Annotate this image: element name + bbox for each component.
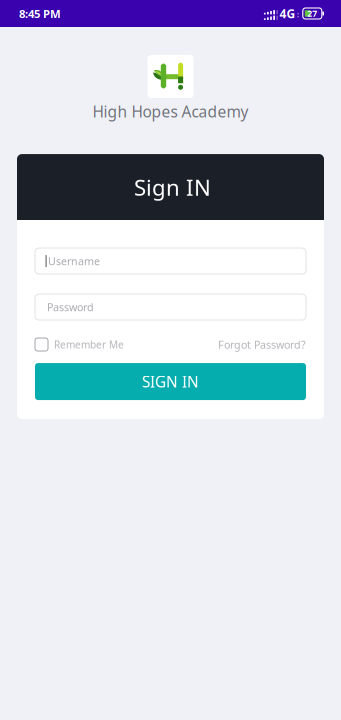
staticText: 27 bbox=[307, 8, 317, 19]
staticText: Username bbox=[48, 254, 100, 268]
staticText: SIGN IN bbox=[142, 371, 199, 392]
button[interactable]: Remember Me bbox=[35, 338, 124, 351]
staticText: Password bbox=[47, 300, 94, 314]
button[interactable]: Password bbox=[35, 294, 306, 320]
staticText: 4G bbox=[279, 5, 295, 22]
staticText: Sign IN bbox=[134, 172, 211, 202]
button[interactable]: SIGN IN bbox=[35, 363, 306, 400]
staticText: Remember Me bbox=[54, 338, 124, 351]
button[interactable]: Forgot Password? bbox=[218, 337, 306, 352]
staticText: Forgot Password? bbox=[218, 337, 306, 352]
staticText: High Hopes Academy bbox=[92, 101, 248, 122]
staticText: 8:45 PM bbox=[19, 6, 61, 21]
button[interactable]: Username bbox=[35, 248, 306, 274]
